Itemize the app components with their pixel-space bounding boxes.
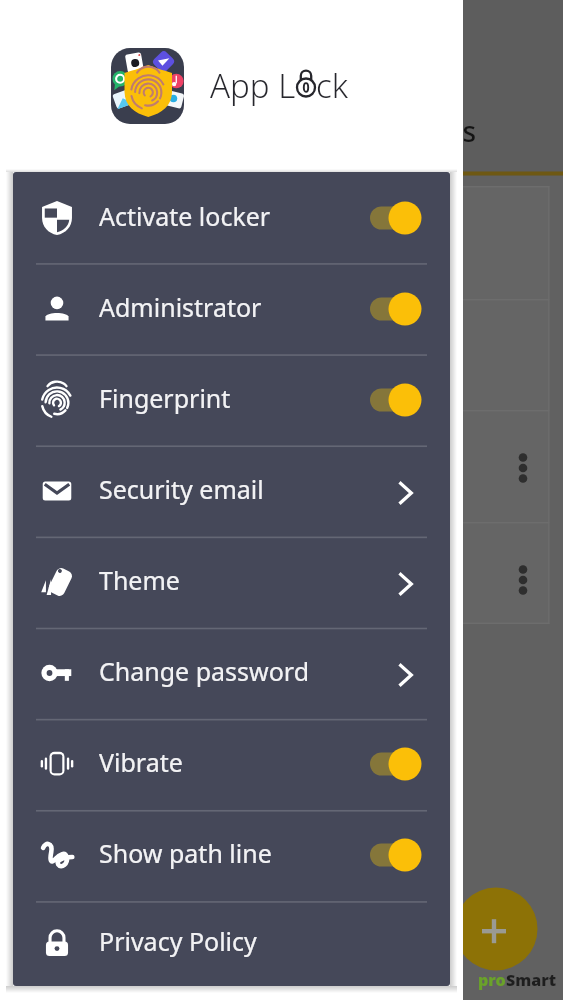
- button[interactable]: Open: [370, 564, 427, 600]
- button[interactable]: Open: [370, 655, 427, 691]
- staticText: Theme: [99, 563, 370, 597]
- staticText: Smart: [506, 969, 557, 991]
- button[interactable]: Open: [370, 473, 427, 509]
- button[interactable]: Theme: [13, 536, 450, 627]
- button[interactable]: Toggle: [370, 291, 427, 327]
- button[interactable]: Show path line: [13, 809, 450, 900]
- staticText: Security email: [99, 472, 370, 506]
- button[interactable]: Toggle: [370, 837, 427, 873]
- staticText: Vibrate: [99, 745, 370, 779]
- staticText: Privacy Policy: [99, 924, 427, 958]
- staticText: Activate locker: [99, 199, 370, 233]
- staticText: pro: [478, 969, 506, 991]
- button[interactable]: Vibrate: [13, 718, 450, 809]
- staticText: Administrator: [99, 290, 370, 324]
- staticText: Change password: [99, 654, 370, 688]
- button[interactable]: Toggle: [370, 382, 427, 418]
- button[interactable]: Toggle: [370, 746, 427, 782]
- button[interactable]: Toggle: [370, 200, 427, 236]
- button[interactable]: Administrator: [13, 263, 450, 354]
- staticText: App L: [210, 63, 296, 108]
- staticText: Fingerprint: [99, 381, 370, 415]
- button[interactable]: Fingerprint: [13, 354, 450, 445]
- button[interactable]: Activate locker: [13, 172, 450, 263]
- button[interactable]: Change password: [13, 627, 450, 718]
- staticText: ns: [445, 112, 477, 150]
- staticText: ck: [316, 63, 349, 108]
- button[interactable]: Privacy Policy: [13, 900, 450, 986]
- staticText: Show path line: [99, 836, 370, 870]
- button[interactable]: Security email: [13, 445, 450, 536]
